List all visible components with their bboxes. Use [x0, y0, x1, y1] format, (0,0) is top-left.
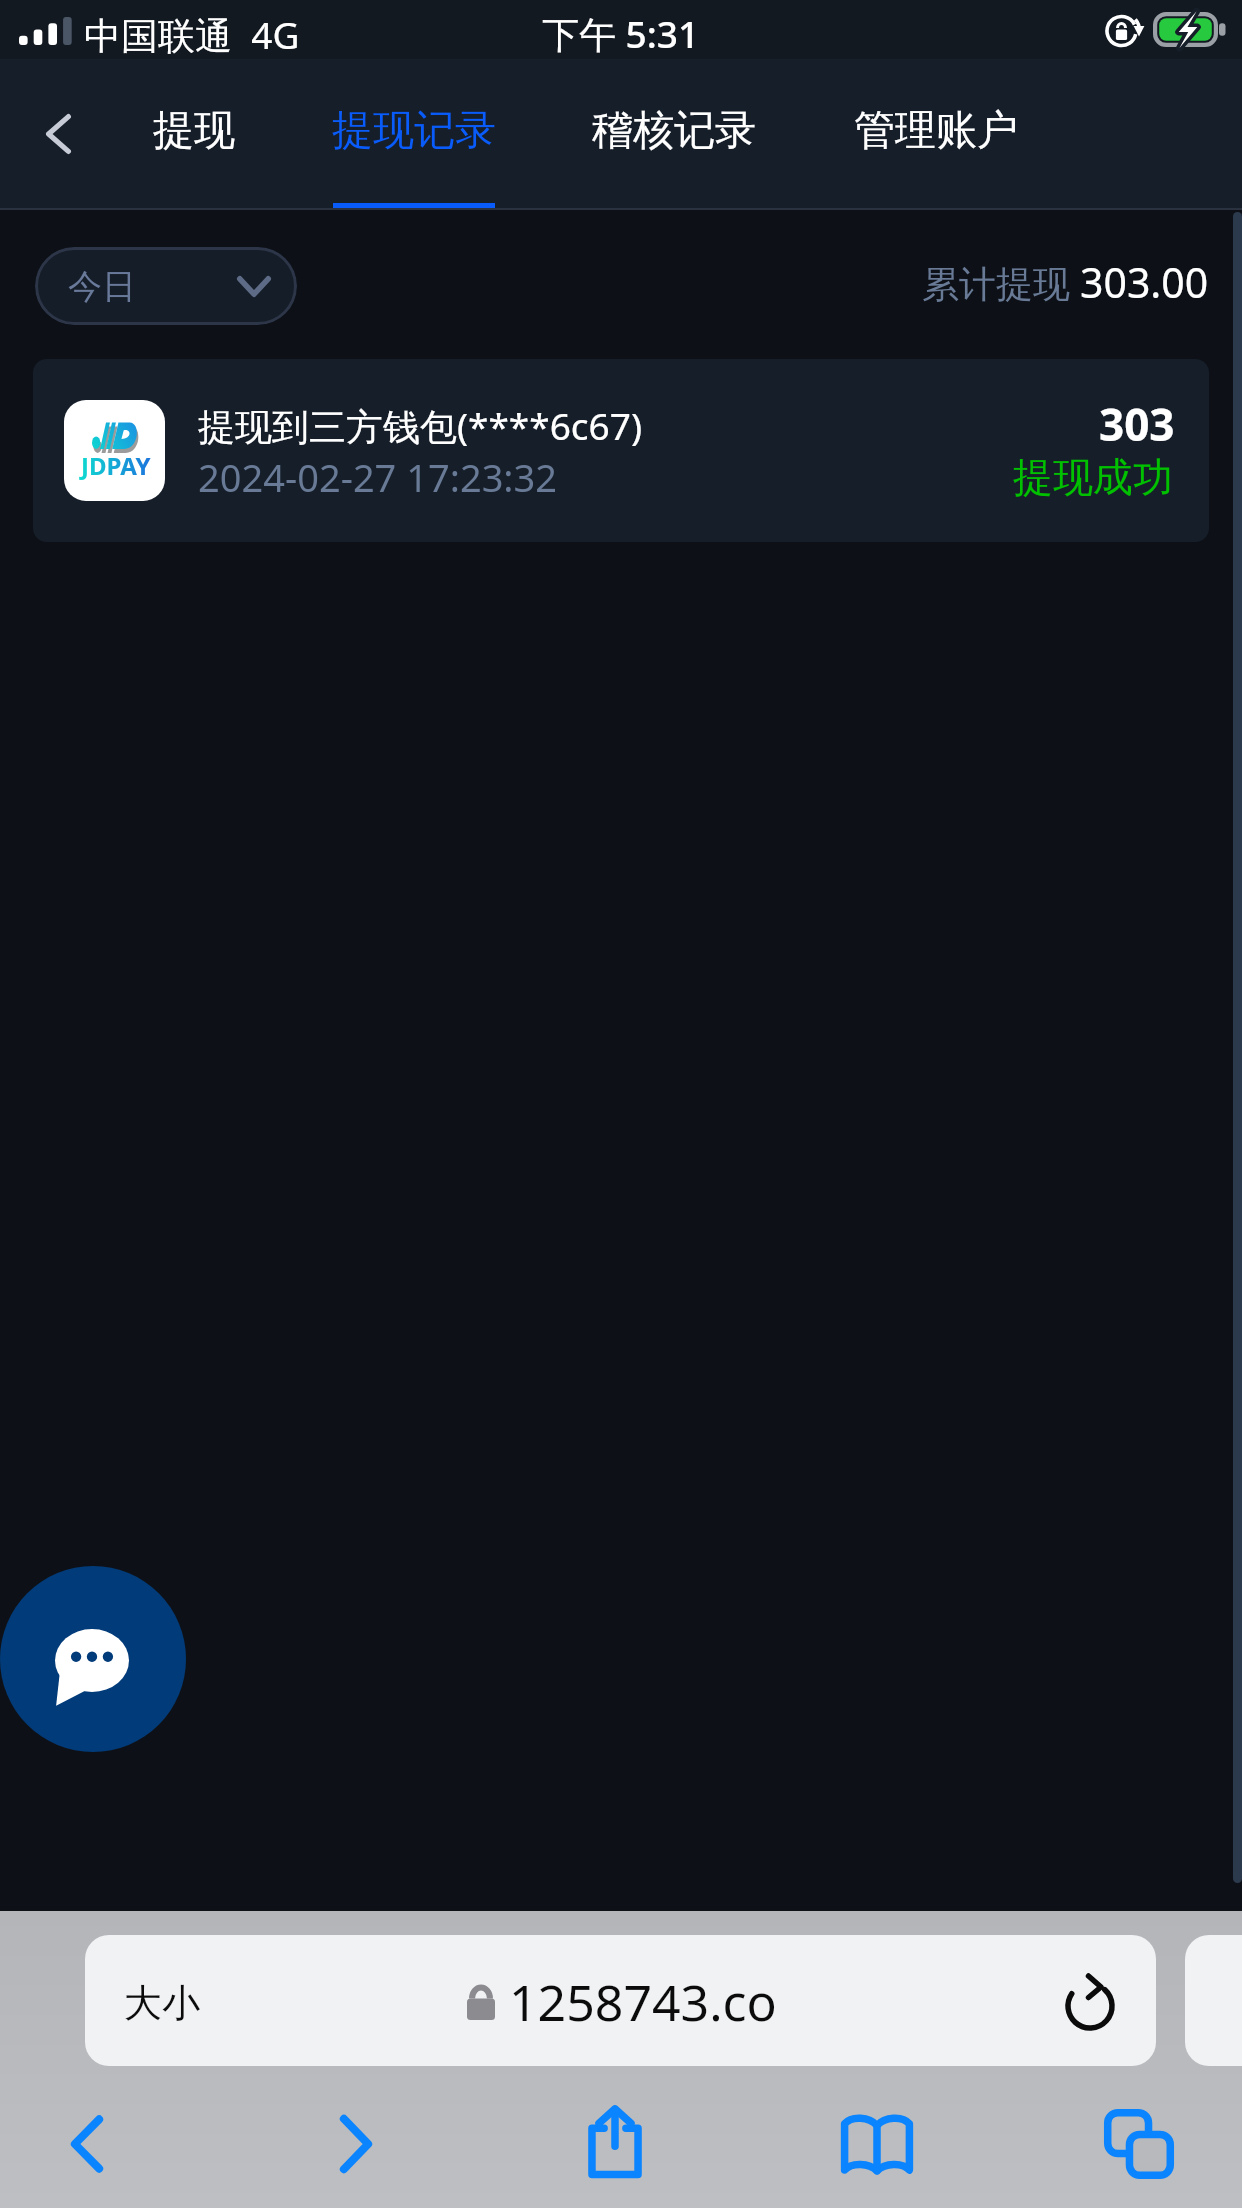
button[interactable]: 大小: [85, 1935, 1156, 2066]
staticText: 下午 5:31: [542, 8, 700, 59]
staticText: 2024-02-27 17:23:32: [198, 451, 558, 503]
button[interactable]: Share: [555, 2080, 675, 2208]
button[interactable]: Back: [14, 80, 104, 190]
staticText: 中国联通 4G: [84, 9, 300, 60]
staticText: 提现: [153, 105, 235, 157]
staticText: 1258743.co: [509, 1968, 777, 2036]
button[interactable]: Back: [27, 2080, 147, 2208]
staticText: JDPAY: [81, 449, 151, 482]
button[interactable]: Tabs: [1079, 2080, 1199, 2208]
button[interactable]: Reload: [1050, 1961, 1130, 2041]
staticText: 303.00: [1080, 254, 1209, 310]
button[interactable]: 管理账户: [835, 59, 1037, 210]
button[interactable]: JDPAY: [33, 359, 1209, 542]
staticText: 稽核记录: [592, 105, 756, 157]
button[interactable]: 提现记录: [313, 59, 515, 210]
button[interactable]: 稽核记录: [573, 59, 775, 210]
button[interactable]: Customer service chat: [0, 1566, 186, 1752]
button[interactable]: 提现: [136, 59, 252, 210]
staticText: 累计提现: [922, 257, 1080, 308]
staticText: 管理账户: [854, 105, 1018, 157]
staticText: 提现成功: [1013, 452, 1173, 502]
staticText: 今日: [68, 265, 136, 308]
staticText: 303: [1099, 394, 1175, 454]
button[interactable]: Bookmarks: [817, 2080, 937, 2208]
button[interactable]: Forward: [296, 2080, 416, 2208]
staticText: 提现记录: [332, 105, 496, 157]
staticText: 提现到三方钱包(****6c67): [198, 400, 642, 451]
staticText: 大小: [124, 1979, 200, 2027]
button[interactable]: 今日: [35, 247, 297, 325]
